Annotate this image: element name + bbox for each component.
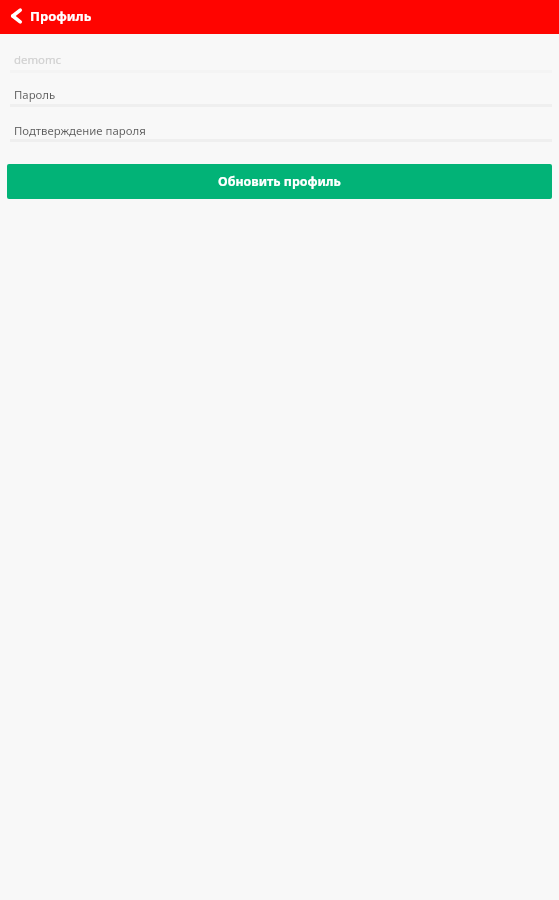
staticText: demomc <box>14 52 62 68</box>
staticText: Подтверждение пароля <box>14 123 146 139</box>
button[interactable]: Пароль <box>0 73 559 107</box>
staticText: Обновить профиль <box>218 173 341 190</box>
button[interactable]: Back <box>0 0 30 34</box>
button[interactable]: Подтверждение пароля <box>0 107 559 142</box>
staticText: Пароль <box>14 87 56 103</box>
staticText: Профиль <box>30 7 92 25</box>
button[interactable]: Обновить профиль <box>7 164 552 199</box>
